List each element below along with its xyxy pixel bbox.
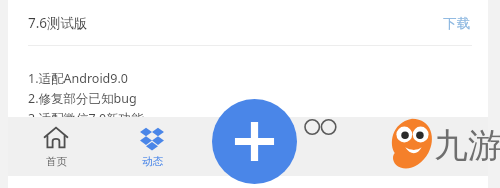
staticText: 3.适配微信7.0新功能: [28, 110, 144, 127]
button[interactable]: 首页: [8, 117, 104, 176]
staticText: 7.6测试版: [28, 14, 88, 32]
staticText: 下载: [443, 15, 470, 32]
staticText: 九游: [434, 124, 500, 167]
staticText: 首页: [46, 155, 67, 168]
staticText: 2.修复部分已知bug: [28, 90, 137, 107]
button[interactable]: 下载: [441, 11, 472, 36]
button[interactable]: More: [296, 117, 392, 176]
staticText: 1.适配Android9.0: [28, 70, 128, 87]
staticText: 动态: [142, 155, 163, 168]
button[interactable]: Add: [212, 99, 297, 184]
button[interactable]: 动态: [104, 117, 200, 176]
button[interactable]: 7.6测试版: [8, 0, 488, 46]
